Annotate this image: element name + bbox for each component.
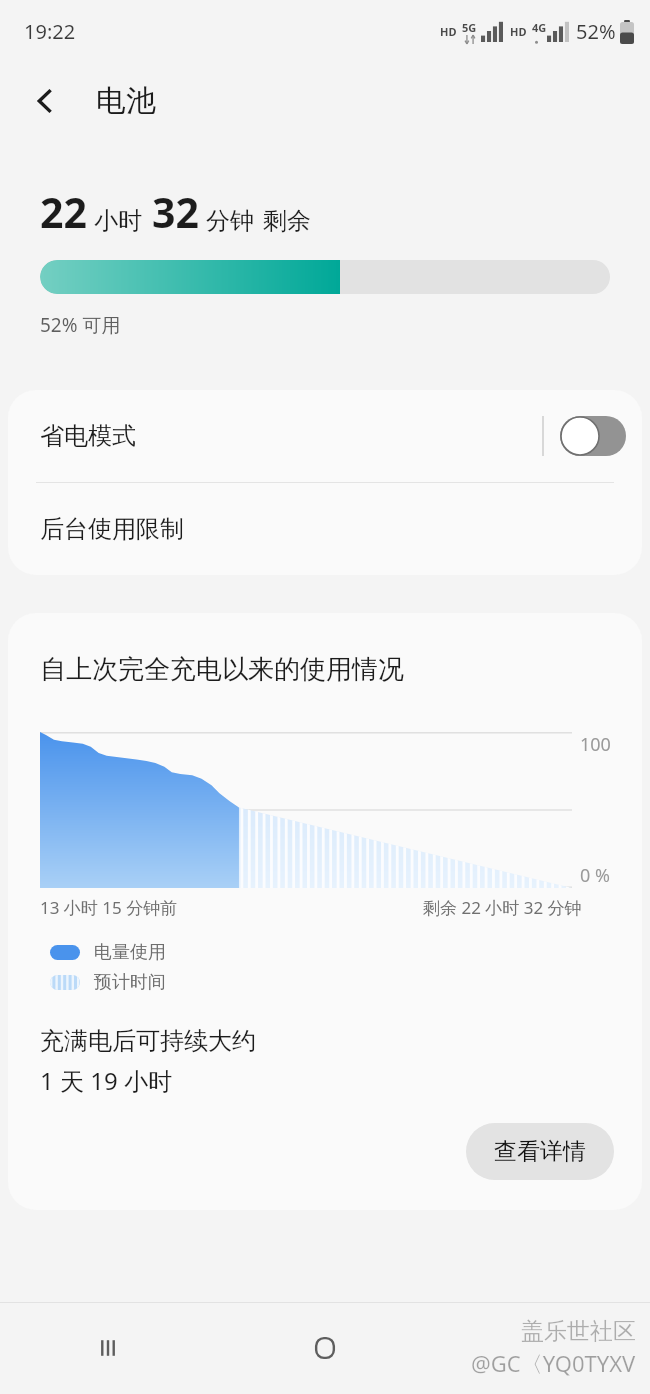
staticText: 盖乐世社区	[521, 1317, 636, 1346]
button[interactable]: 省电模式	[8, 390, 642, 482]
staticText: 52%	[576, 18, 616, 45]
staticText: 13 小时 15 分钟前	[40, 896, 178, 919]
staticText: 查看详情	[494, 1137, 586, 1166]
staticText: 预计时间	[94, 971, 166, 994]
staticText: 电量使用	[94, 941, 166, 964]
button[interactable]: 后台使用限制	[8, 483, 642, 575]
staticText: 小时	[94, 206, 142, 236]
staticText: 后台使用限制	[40, 514, 184, 544]
staticText: 4G	[532, 20, 547, 35]
staticText: 32	[152, 184, 199, 240]
button[interactable]: Power saving toggle	[560, 413, 626, 459]
button[interactable]: Home	[297, 1320, 353, 1376]
staticText: 充满电后可持续大约	[40, 1026, 256, 1056]
staticText: 自上次完全充电以来的使用情况	[40, 653, 404, 686]
staticText: HD	[510, 24, 527, 39]
button[interactable]: Recents	[80, 1320, 136, 1376]
staticText: 省电模式	[40, 421, 542, 451]
button[interactable]: Back	[20, 76, 70, 126]
staticText: 22	[40, 184, 87, 240]
staticText: 5G	[462, 20, 477, 35]
staticText: @GC〈YQ0TYXV	[471, 1348, 636, 1378]
staticText: 剩余 22 小时 32 分钟	[423, 896, 582, 919]
staticText: 19:22	[24, 18, 76, 45]
staticText: 52% 可用	[40, 312, 121, 338]
button[interactable]: 查看详情	[466, 1123, 614, 1180]
staticText: 0 %	[580, 863, 610, 888]
staticText: 1 天 19 小时	[40, 1064, 172, 1097]
staticText: 分钟	[206, 206, 254, 236]
staticText: 电池	[96, 82, 156, 120]
staticText: 100	[580, 732, 611, 757]
staticText: 剩余	[263, 206, 311, 236]
staticText: HD	[440, 24, 457, 39]
